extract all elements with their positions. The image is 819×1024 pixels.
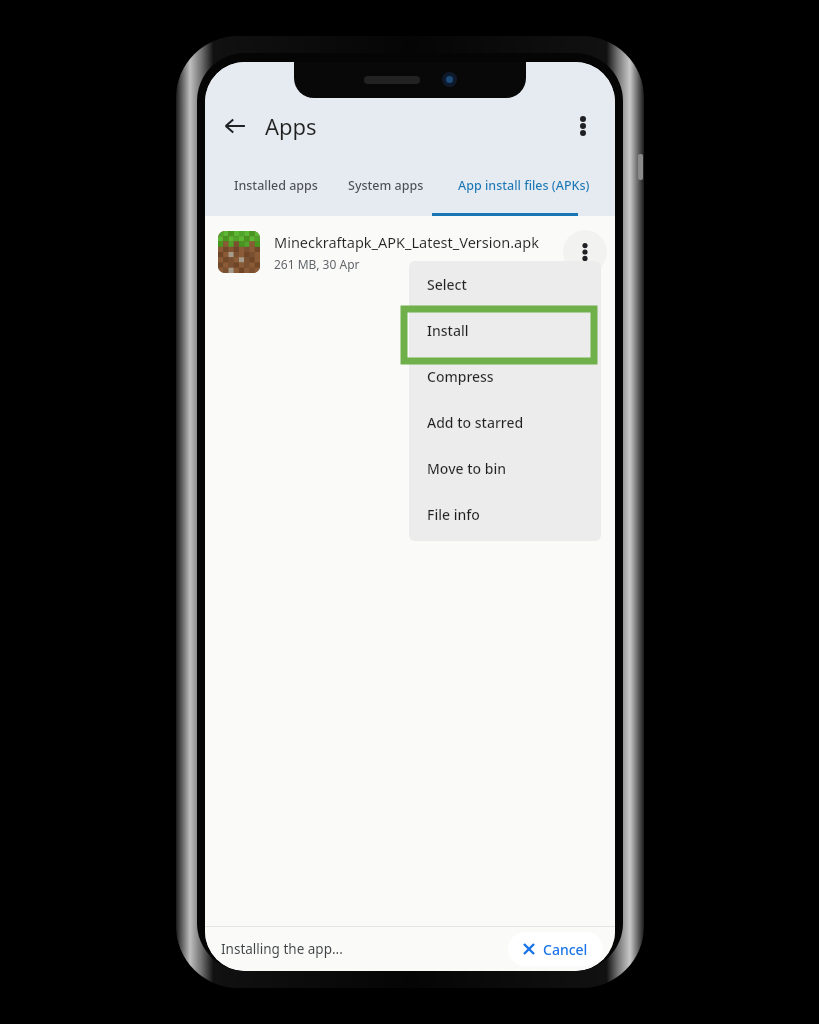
staticText: Install — [427, 321, 469, 340]
button[interactable]: Select — [409, 261, 601, 307]
staticText: Select — [427, 275, 467, 294]
button[interactable]: App install files (APKs) — [438, 170, 609, 216]
staticText: Installed apps — [234, 177, 318, 194]
button[interactable]: More options — [561, 104, 605, 148]
staticText: App install files (APKs) — [458, 177, 590, 194]
staticText: Cancel — [543, 940, 588, 959]
staticText: Move to bin — [427, 459, 506, 478]
button[interactable]: Move to bin — [409, 445, 601, 491]
button[interactable]: Back — [213, 104, 257, 148]
button[interactable]: Install — [409, 307, 601, 353]
button[interactable]: Add to starred — [409, 399, 601, 445]
button[interactable]: File options — [563, 230, 607, 274]
button[interactable]: Mineckraftapk_APK_Latest_Version.apk — [205, 216, 615, 288]
staticText: Add to starred — [427, 413, 524, 432]
button[interactable]: Cancel — [508, 932, 603, 966]
button[interactable]: Installed apps — [219, 170, 333, 216]
staticText: System apps — [348, 177, 424, 194]
button[interactable]: System apps — [333, 170, 438, 216]
staticText: Apps — [265, 111, 317, 141]
staticText: Installing the app... — [221, 940, 343, 958]
button[interactable]: File info — [409, 491, 601, 537]
staticText: File info — [427, 505, 480, 524]
staticText: 261 MB, 30 Apr — [274, 256, 360, 272]
staticText: Compress — [427, 367, 494, 386]
staticText: Mineckraftapk_APK_Latest_Version.apk — [274, 232, 539, 252]
button[interactable]: Compress — [409, 353, 601, 399]
